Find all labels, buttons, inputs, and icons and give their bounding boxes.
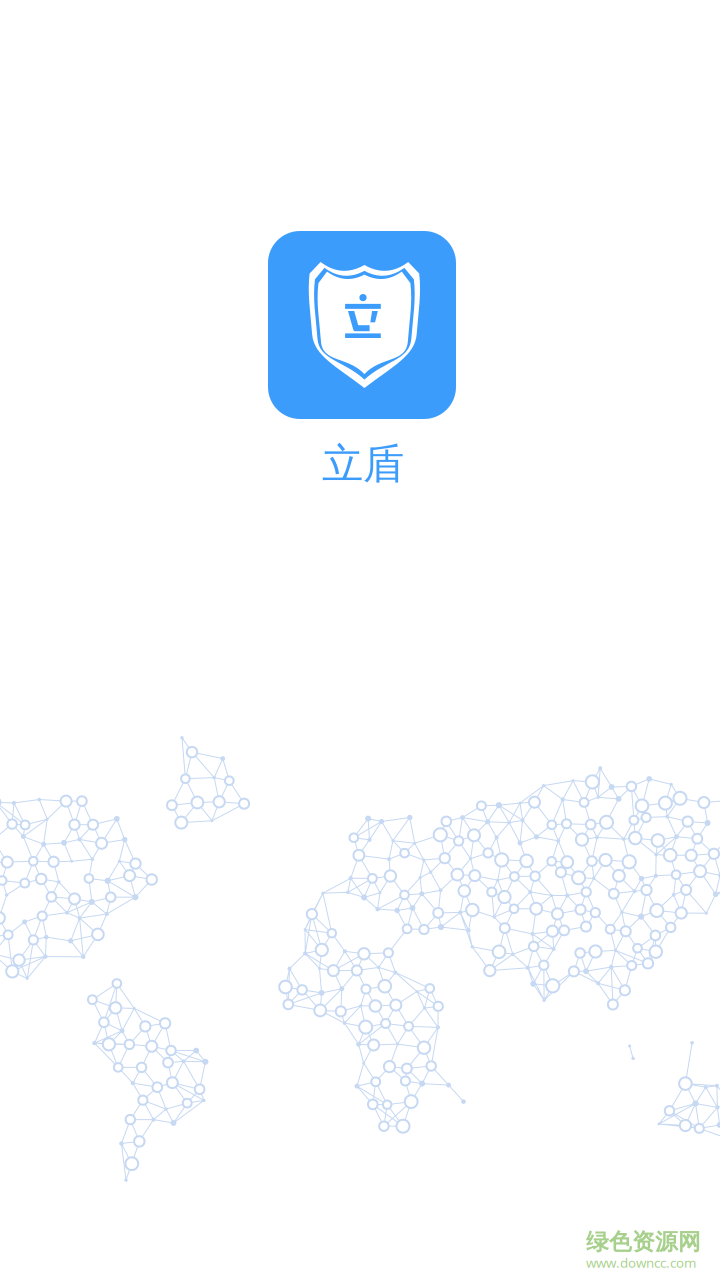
- staticText: 立盾: [322, 439, 404, 489]
- button[interactable]: 立盾: [0, 0, 720, 1280]
- staticText: www.downcc.com: [586, 1254, 696, 1271]
- staticText: 绿色资源网: [586, 1228, 701, 1256]
